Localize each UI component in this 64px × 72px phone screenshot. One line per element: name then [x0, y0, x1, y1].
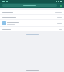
- button[interactable]: Search: [2, 4, 57, 7]
- button[interactable]: Scan: [59, 4, 62, 7]
- button[interactable]: [0, 15, 64, 19]
- button[interactable]: [0, 10, 64, 14]
- button[interactable]: Show more: [0, 33, 64, 36]
- button[interactable]: [0, 20, 64, 26]
- button[interactable]: [0, 27, 64, 31]
